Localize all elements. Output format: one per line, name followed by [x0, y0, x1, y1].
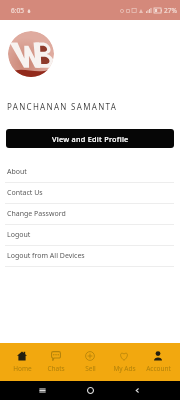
staticText: My Ads [113, 364, 136, 373]
button[interactable]: Home [5, 343, 39, 381]
staticText: Logout from All Devices [7, 251, 85, 261]
button[interactable]: Sell [73, 343, 107, 381]
button[interactable]: Contact Us [0, 183, 180, 204]
staticText: 27% [164, 6, 177, 15]
staticText: Sell [85, 364, 96, 373]
staticText: View and Edit Profile [52, 134, 129, 144]
button[interactable]: Logout from All Devices [0, 246, 180, 267]
button[interactable]: My Ads [107, 343, 141, 381]
staticText: 6:05 [11, 6, 24, 15]
other: Home [86, 386, 95, 395]
button[interactable]: About [0, 162, 180, 183]
button[interactable]: Chats [39, 343, 73, 381]
other: Recents [38, 386, 47, 395]
staticText: Home [13, 364, 32, 373]
staticText: Account [146, 364, 171, 373]
other: Back [133, 386, 142, 395]
button[interactable]: Logout [0, 225, 180, 246]
button[interactable]: View and Edit Profile [6, 129, 174, 148]
button[interactable]: Account [141, 343, 175, 381]
staticText: PANCHANAN SAMANTA [7, 101, 118, 112]
staticText: About [7, 167, 27, 177]
staticText: Logout [7, 230, 31, 240]
staticText: Chats [47, 364, 65, 373]
staticText: Contact Us [7, 188, 43, 198]
staticText: Change Password [7, 209, 66, 219]
button[interactable]: Change Password [0, 204, 180, 225]
